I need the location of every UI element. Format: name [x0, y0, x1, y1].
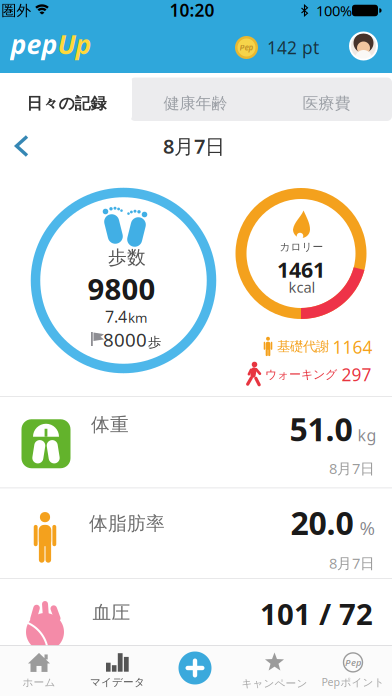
- staticText: 健康年齢: [163, 94, 227, 113]
- button[interactable]: キャンペーン: [235, 647, 313, 695]
- staticText: キャンペーン: [241, 677, 307, 690]
- button[interactable]: 体脂肪率: [0, 487, 392, 578]
- staticText: ウォーキング: [265, 367, 337, 382]
- staticText: 血圧: [92, 601, 130, 624]
- button[interactable]: プロフィール: [349, 32, 377, 60]
- staticText: Pepポイント: [321, 675, 384, 689]
- staticText: 体重: [91, 413, 129, 436]
- staticText: 10:20: [169, 0, 214, 21]
- staticText: Pep: [239, 42, 253, 53]
- staticText: pep: [10, 26, 57, 62]
- staticText: 体脂肪率: [89, 512, 165, 535]
- staticText: 8月7日: [329, 553, 375, 573]
- staticText: 歩: [148, 334, 161, 350]
- staticText: 7.4: [105, 306, 127, 327]
- button[interactable]: 前の日: [0, 131, 40, 161]
- staticText: 8000: [103, 327, 147, 352]
- staticText: %: [359, 515, 375, 540]
- staticText: 日々の記録: [26, 94, 106, 113]
- staticText: 1461: [277, 255, 325, 284]
- staticText: 100%: [316, 1, 352, 20]
- button[interactable]: 日々の記録: [1, 81, 132, 126]
- staticText: 101 / 72: [260, 594, 373, 633]
- button[interactable]: Pep: [235, 36, 319, 59]
- staticText: 医療費: [302, 94, 350, 113]
- staticText: km: [128, 309, 147, 326]
- button[interactable]: 記録を追加: [173, 646, 217, 690]
- staticText: 51.0: [289, 407, 352, 450]
- staticText: Pep: [345, 656, 361, 669]
- staticText: 1164: [332, 335, 372, 358]
- staticText: マイデータ: [90, 676, 145, 689]
- staticText: Up: [57, 26, 91, 62]
- staticText: kg: [357, 424, 376, 445]
- button[interactable]: Pep: [314, 647, 392, 695]
- staticText: 9800: [87, 269, 155, 308]
- staticText: カロリー: [279, 240, 323, 253]
- staticText: 297: [341, 363, 371, 386]
- staticText: ホーム: [22, 676, 55, 689]
- button[interactable]: 体重: [0, 396, 392, 487]
- staticText: 20.0: [290, 501, 353, 544]
- staticText: 8月7日: [163, 133, 225, 159]
- staticText: 圏外: [1, 1, 31, 19]
- staticText: 歩数: [108, 246, 146, 269]
- button[interactable]: 医療費: [261, 82, 391, 125]
- button[interactable]: 血圧: [0, 578, 392, 669]
- button[interactable]: 健康年齢: [130, 82, 260, 125]
- staticText: 基礎代謝: [277, 338, 329, 355]
- staticText: 8月7日: [329, 458, 375, 478]
- staticText: kcal: [288, 277, 315, 297]
- button[interactable]: マイデータ: [79, 647, 155, 695]
- button[interactable]: ホーム: [1, 647, 77, 695]
- staticText: 142 pt: [267, 36, 319, 59]
